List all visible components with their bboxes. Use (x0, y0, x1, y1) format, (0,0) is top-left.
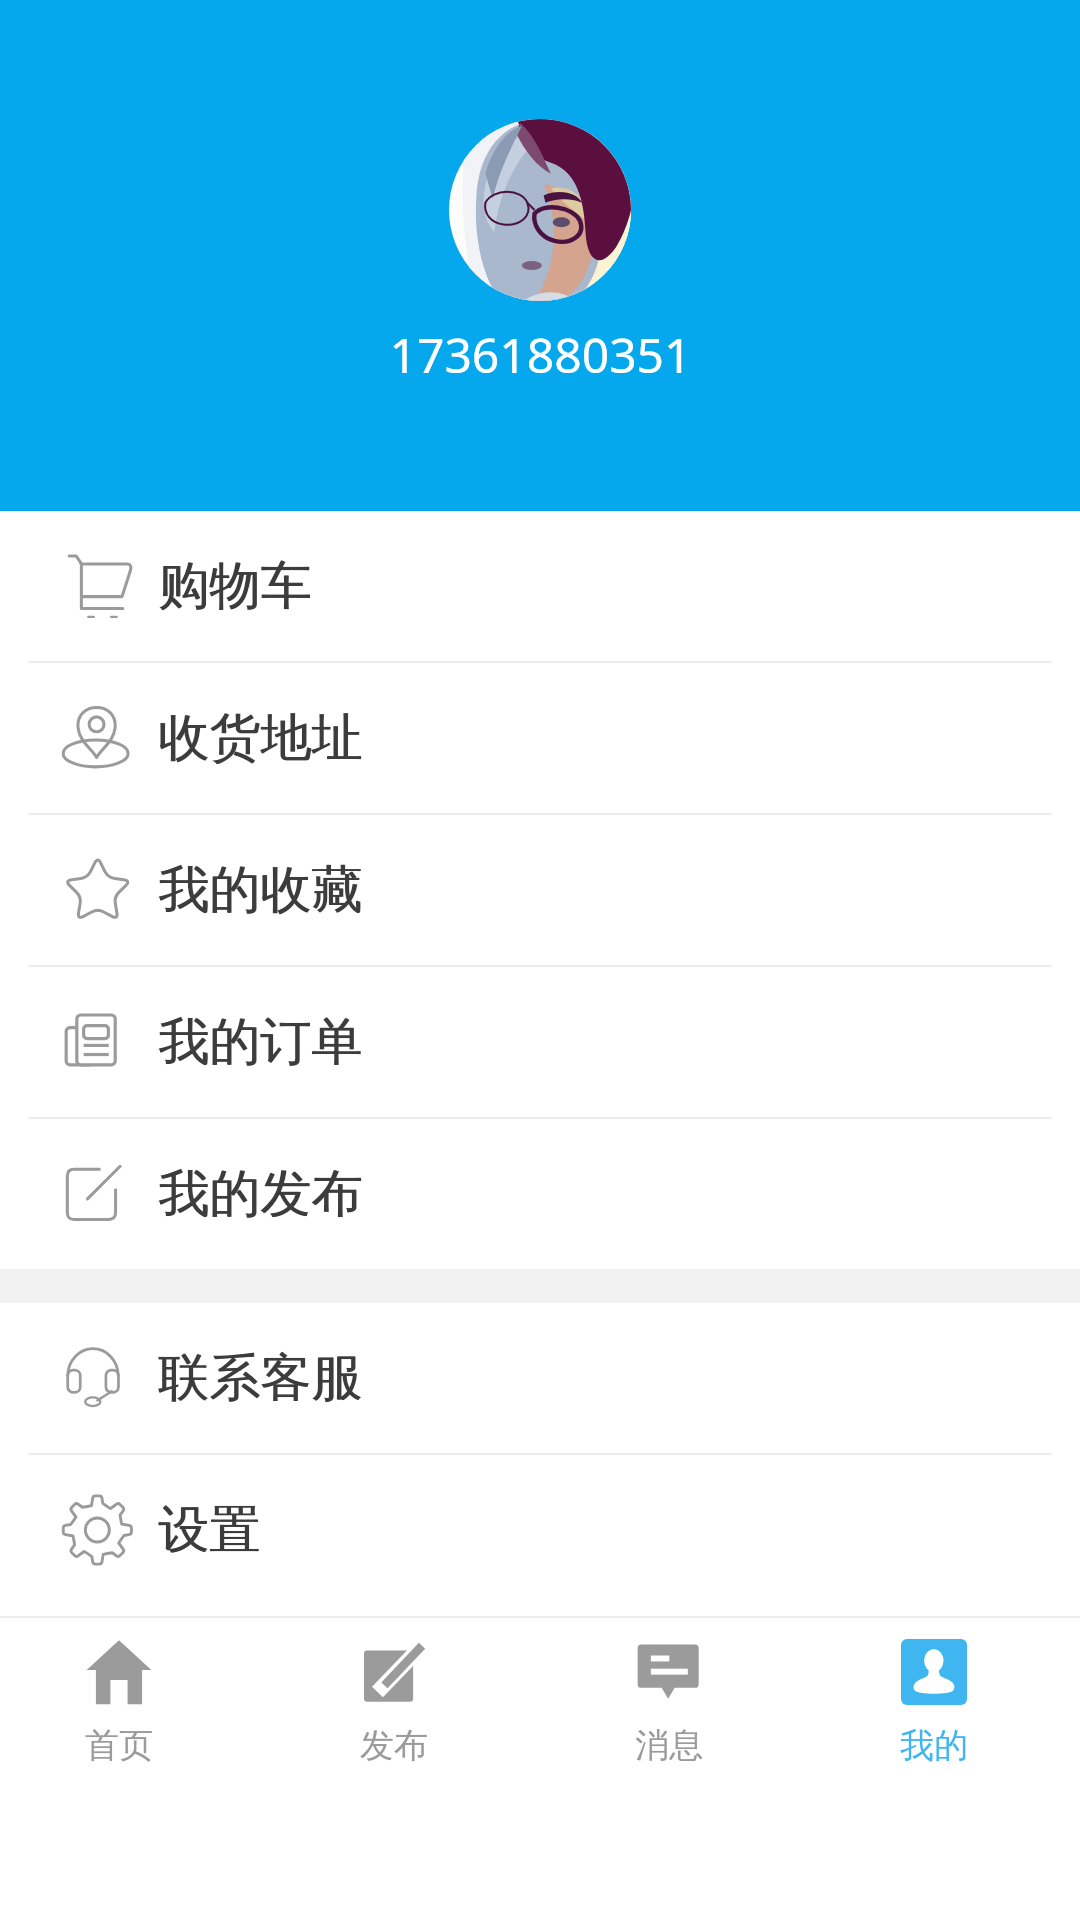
staticText: 我的 (900, 1724, 968, 1767)
button[interactable]: 我的发布 (0, 1119, 1080, 1269)
staticText: 我的收藏 (158, 858, 362, 922)
button[interactable]: 联系客服 (0, 1303, 1080, 1453)
button[interactable]: 消息 (531, 1618, 806, 1920)
button[interactable]: 我的收藏 (0, 815, 1080, 965)
button[interactable]: 收货地址 (0, 663, 1080, 813)
staticText: 收货地址 (158, 706, 362, 770)
button[interactable]: 发布 (256, 1618, 531, 1920)
staticText: 消息 (635, 1724, 703, 1767)
staticText: 设置 (158, 1498, 260, 1562)
staticText: 首页 (85, 1724, 153, 1767)
staticText: 联系客服 (158, 1346, 362, 1410)
staticText: 我的订单 (158, 1010, 362, 1074)
button[interactable]: 首页 (0, 1618, 256, 1920)
staticText: 17361880351 (389, 322, 692, 387)
staticText: 发布 (360, 1724, 428, 1767)
button[interactable]: 设置 (0, 1455, 1080, 1605)
staticText: 我的发布 (158, 1162, 362, 1226)
button[interactable]: 购物车 (0, 511, 1080, 661)
button[interactable]: Profile photo (449, 119, 631, 301)
button[interactable]: 我的订单 (0, 967, 1080, 1117)
button[interactable]: 我的 (806, 1618, 1061, 1920)
staticText: 购物车 (158, 554, 311, 618)
